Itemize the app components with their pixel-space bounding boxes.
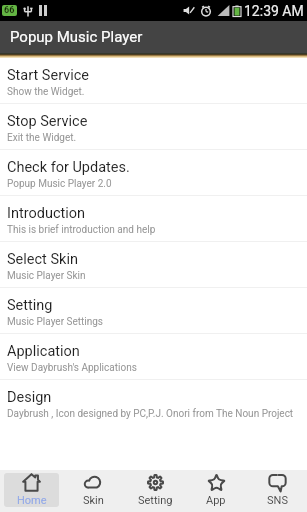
staticText: Skin bbox=[83, 494, 104, 507]
staticText: Setting bbox=[7, 297, 53, 314]
button[interactable]: App bbox=[189, 473, 243, 507]
staticText: Music Player Skin bbox=[7, 270, 86, 282]
staticText: Select Skin bbox=[7, 251, 78, 268]
staticText: Introduction bbox=[7, 205, 86, 222]
button[interactable]: Setting bbox=[128, 473, 182, 507]
staticText: Home bbox=[17, 494, 47, 507]
button[interactable]: Stop Service bbox=[0, 104, 307, 150]
staticText: Popup Music Player bbox=[10, 28, 143, 46]
staticText: Check for Updates. bbox=[7, 159, 130, 176]
staticText: Exit the Widget. bbox=[7, 132, 77, 144]
button[interactable]: Popup Music Player bbox=[0, 21, 307, 53]
staticText: View Daybrush's Applications bbox=[7, 362, 137, 374]
button[interactable]: Design bbox=[0, 380, 307, 426]
staticText: Setting bbox=[138, 494, 173, 507]
staticText: Daybrush , Icon designed by PC,P.J. Onor… bbox=[7, 408, 294, 420]
button[interactable]: Setting bbox=[0, 288, 307, 334]
other: Home bbox=[22, 473, 41, 492]
staticText: Show the Widget. bbox=[7, 86, 85, 98]
button[interactable]: Home bbox=[4, 473, 59, 507]
button[interactable]: SNS bbox=[250, 473, 304, 507]
button[interactable]: Skin bbox=[66, 473, 121, 507]
button[interactable]: Select Skin bbox=[0, 242, 307, 288]
staticText: Application bbox=[7, 343, 80, 360]
staticText: Start Service bbox=[7, 67, 90, 84]
staticText: App bbox=[206, 494, 226, 507]
staticText: Popup Music Player 2.0 bbox=[7, 178, 112, 190]
button[interactable]: Introduction bbox=[0, 196, 307, 242]
other: Skin bbox=[84, 473, 103, 492]
button[interactable]: Application bbox=[0, 334, 307, 380]
staticText: Design bbox=[7, 389, 52, 406]
staticText: Music Player Settings bbox=[7, 316, 104, 328]
staticText: Stop Service bbox=[7, 113, 88, 130]
button[interactable]: Start Service bbox=[0, 58, 307, 104]
staticText: 66 bbox=[4, 5, 15, 16]
staticText: This is brief introduction and help bbox=[7, 224, 156, 236]
other: Setting bbox=[146, 473, 165, 492]
staticText: SNS bbox=[267, 494, 288, 507]
other: SNS bbox=[268, 473, 287, 492]
button[interactable]: Check for Updates. bbox=[0, 150, 307, 196]
other: App bbox=[207, 473, 226, 492]
staticText: 12:39 AM bbox=[244, 3, 304, 19]
